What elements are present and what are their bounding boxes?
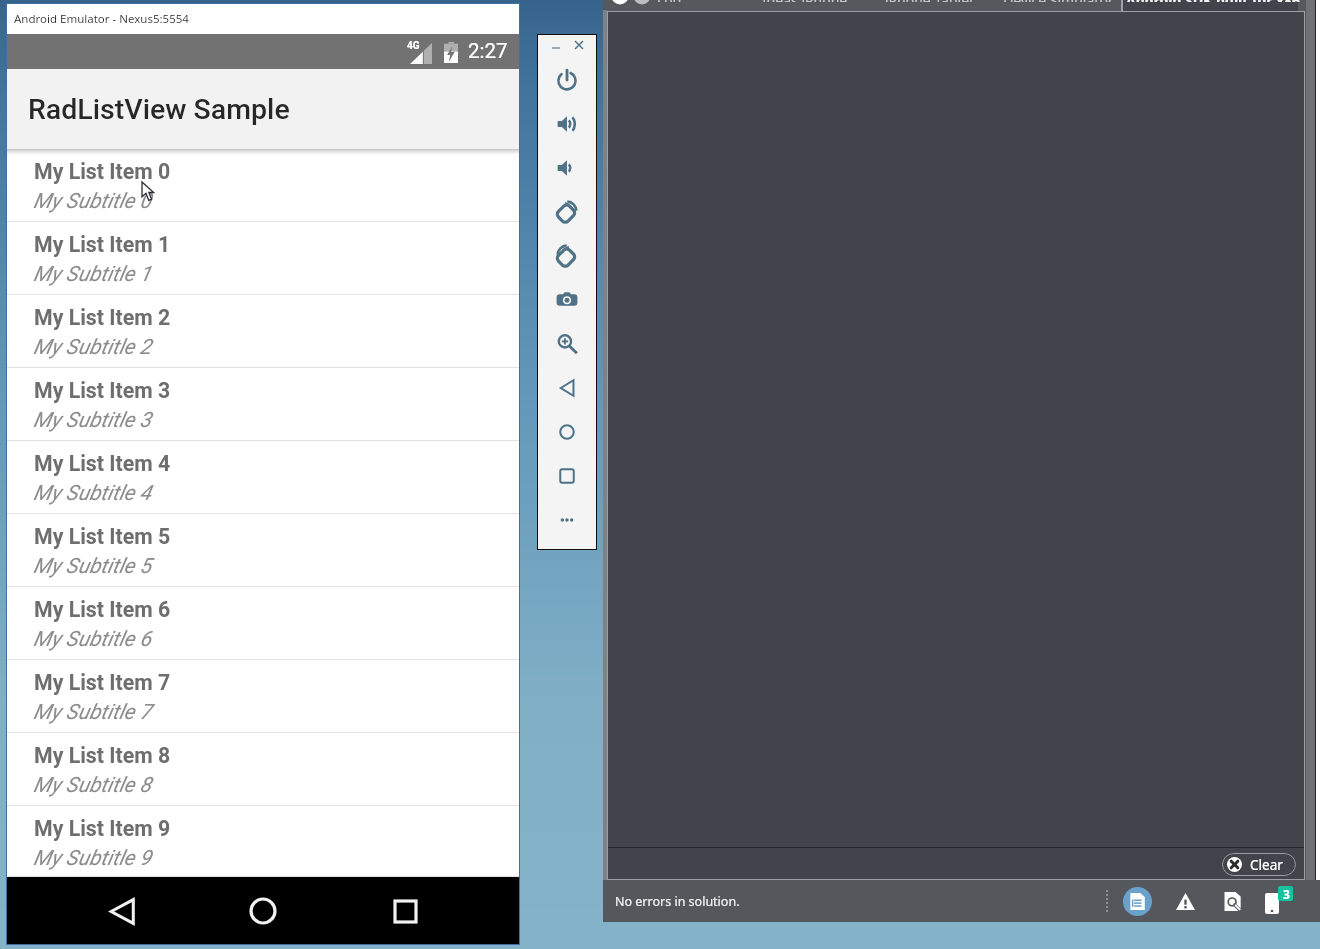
button[interactable]: Devices bbox=[1262, 885, 1294, 917]
button[interactable]: More bbox=[545, 500, 589, 540]
staticText: My List Item 3 bbox=[34, 378, 171, 403]
button[interactable]: Screenshot bbox=[545, 280, 589, 320]
button[interactable]: Power bbox=[545, 60, 589, 100]
button[interactable]: Home bbox=[237, 885, 289, 937]
staticText: Android Emulator - Nexus5:5554 bbox=[14, 11, 189, 27]
button[interactable]: Close bbox=[569, 35, 589, 55]
staticText: My Subtitle 6 bbox=[33, 627, 151, 652]
button[interactable]: Android SDK built for x86_64 bbox=[1116, 0, 1312, 11]
button[interactable]: Rotate left bbox=[545, 192, 589, 232]
button[interactable]: Clear bbox=[1222, 853, 1296, 876]
staticText: My List Item 2 bbox=[34, 305, 171, 330]
button[interactable]: Ideas iPhone bbox=[752, 0, 838, 11]
staticText: 2:27 bbox=[468, 39, 508, 63]
staticText: My List Item 5 bbox=[34, 524, 171, 549]
button[interactable]: Log bbox=[647, 0, 672, 11]
button[interactable]: Device Simulator bbox=[993, 0, 1104, 11]
button[interactable]: My List Item 7 bbox=[6, 660, 520, 733]
button[interactable]: My List Item 3 bbox=[6, 368, 520, 441]
button[interactable]: iPhone Tablet bbox=[875, 0, 965, 11]
staticText: My Subtitle 0 bbox=[33, 189, 151, 214]
staticText: Device Simulator bbox=[1003, 0, 1114, 2]
button[interactable]: Home bbox=[545, 412, 589, 452]
staticText: No errors in solution. bbox=[615, 893, 740, 910]
staticText: My Subtitle 3 bbox=[33, 408, 151, 433]
staticText: My List Item 7 bbox=[34, 670, 171, 695]
button[interactable]: My List Item 6 bbox=[6, 587, 520, 660]
staticText: Android SDK built for x86_64 bbox=[1126, 0, 1320, 2]
button[interactable]: My List Item 0 bbox=[6, 149, 520, 222]
button[interactable]: Output bbox=[1123, 887, 1152, 916]
button[interactable]: Recents bbox=[379, 885, 431, 937]
button[interactable]: Find bbox=[1218, 887, 1246, 915]
button[interactable]: My List Item 1 bbox=[6, 222, 520, 295]
staticText: My List Item 1 bbox=[34, 232, 171, 257]
button[interactable]: Volume up bbox=[545, 104, 589, 144]
staticText: RadListView Sample bbox=[28, 93, 290, 126]
staticText: My List Item 9 bbox=[34, 816, 171, 841]
button[interactable]: Minimize bbox=[546, 38, 566, 58]
staticText: My Subtitle 2 bbox=[33, 335, 151, 360]
staticText: My List Item 6 bbox=[34, 597, 171, 622]
button[interactable]: Back bbox=[545, 368, 589, 408]
button[interactable]: My List Item 5 bbox=[6, 514, 520, 587]
button[interactable]: Zoom bbox=[545, 324, 589, 364]
button[interactable]: My List Item 2 bbox=[6, 295, 520, 368]
staticText: My List Item 8 bbox=[34, 743, 171, 768]
staticText: My List Item 4 bbox=[34, 451, 171, 476]
staticText: Ideas iPhone bbox=[762, 0, 848, 2]
staticText: My Subtitle 7 bbox=[33, 700, 151, 725]
button[interactable]: Errors bbox=[1171, 887, 1199, 915]
staticText: Clear bbox=[1250, 856, 1283, 874]
staticText: My Subtitle 1 bbox=[33, 262, 151, 287]
staticText: iPhone Tablet bbox=[885, 0, 975, 2]
staticText: My Subtitle 9 bbox=[33, 846, 151, 871]
staticText: My Subtitle 8 bbox=[33, 773, 151, 798]
staticText: 4G bbox=[407, 40, 420, 52]
staticText: My Subtitle 5 bbox=[33, 554, 151, 579]
button[interactable]: Back bbox=[96, 885, 148, 937]
button[interactable]: My List Item 4 bbox=[6, 441, 520, 514]
staticText: Log bbox=[657, 0, 682, 2]
staticText: 3 bbox=[1283, 886, 1290, 902]
button[interactable]: Overview bbox=[545, 456, 589, 496]
button[interactable]: Volume down bbox=[545, 148, 589, 188]
staticText: My Subtitle 4 bbox=[33, 481, 151, 506]
staticText: My List Item 0 bbox=[34, 159, 171, 184]
button[interactable]: Rotate right bbox=[545, 236, 589, 276]
button[interactable]: My List Item 8 bbox=[6, 733, 520, 806]
button[interactable]: My List Item 9 bbox=[6, 806, 520, 877]
